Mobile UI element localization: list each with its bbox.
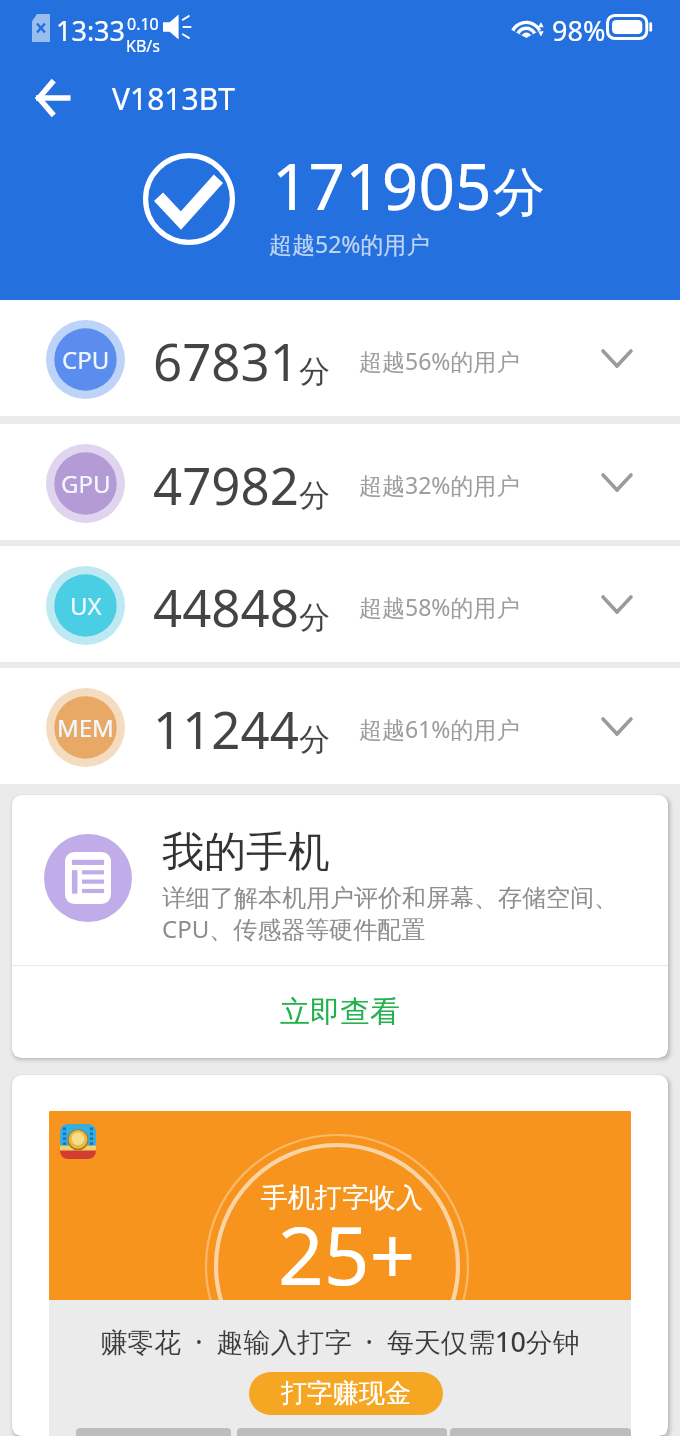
staticText: 超越61%的用户: [359, 713, 520, 744]
staticText: GPU: [61, 467, 111, 500]
button[interactable]: 手机打字收入: [12, 1075, 668, 1436]
staticText: 手机打字收入: [261, 1181, 423, 1215]
staticText: 0.10: [127, 13, 159, 35]
staticText: KB/s: [126, 35, 160, 57]
staticText: MEM: [57, 711, 114, 744]
staticText: 13:33: [56, 12, 126, 49]
staticText: 超越52%的用户: [269, 228, 430, 259]
staticText: UX: [70, 589, 102, 622]
staticText: 打字赚现金: [281, 1377, 411, 1410]
staticText: 赚零花 · 趣输入打字 · 每天仅需10分钟: [100, 1323, 580, 1360]
staticText: 分: [299, 720, 330, 759]
staticText: V1813BT: [112, 78, 235, 119]
staticText: 我的手机: [162, 826, 330, 879]
button[interactable]: 立即查看: [12, 966, 668, 1058]
button[interactable]: 打字赚现金: [249, 1372, 443, 1415]
staticText: 67831: [153, 326, 299, 395]
staticText: 分: [299, 476, 330, 515]
staticText: 立即查看: [280, 993, 400, 1031]
button[interactable]: GPU: [0, 424, 680, 540]
staticText: 超越56%的用户: [359, 345, 520, 376]
staticText: 超越58%的用户: [359, 591, 520, 622]
button[interactable]: UX: [0, 546, 680, 662]
button[interactable]: Back: [14, 59, 92, 137]
staticText: 98%: [552, 12, 606, 49]
button[interactable]: MEM: [0, 668, 680, 784]
staticText: 超越32%的用户: [359, 469, 520, 500]
staticText: 44848: [153, 572, 299, 641]
staticText: 分: [299, 352, 330, 391]
staticText: 详细了解本机用户评价和屏幕、存储空间、 CPU、传感器等硬件配置: [162, 883, 618, 945]
staticText: 分: [299, 598, 330, 637]
staticText: 11244: [153, 694, 299, 763]
staticText: 47982: [153, 450, 299, 519]
staticText: CPU: [62, 343, 110, 376]
staticText: 25+: [278, 1199, 416, 1300]
staticText: 分: [493, 160, 545, 226]
button[interactable]: CPU: [0, 300, 680, 416]
staticText: 171905: [272, 142, 492, 229]
